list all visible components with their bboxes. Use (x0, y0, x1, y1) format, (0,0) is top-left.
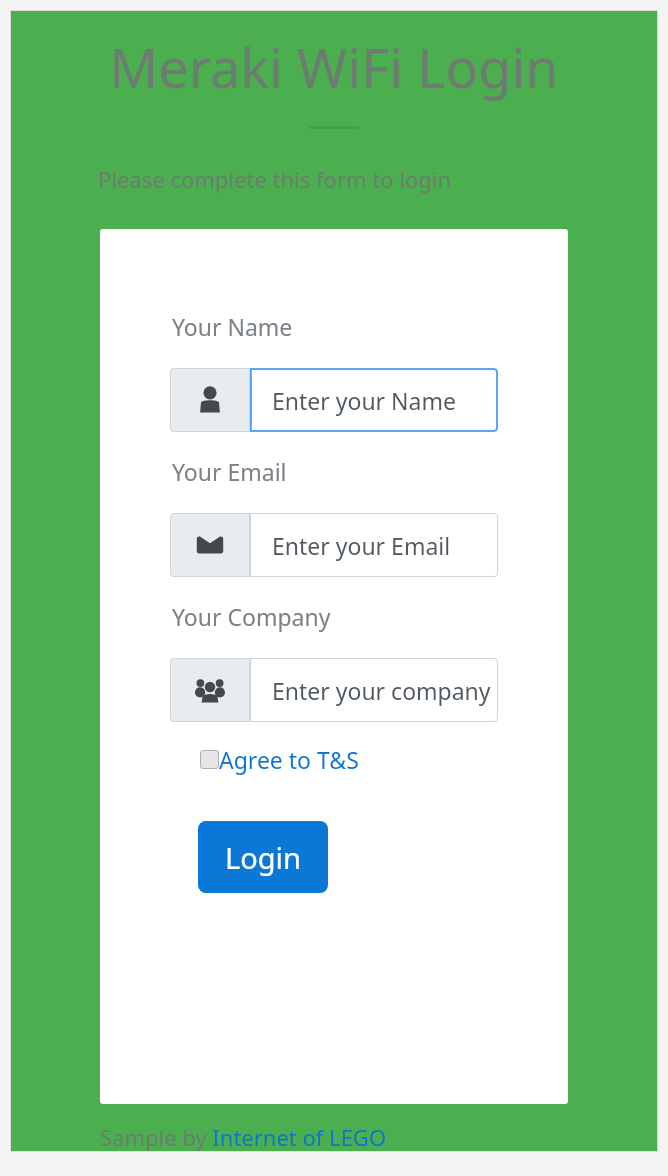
staticText: Login (225, 838, 301, 877)
other: Email (170, 513, 250, 577)
staticText: Your Name (172, 311, 293, 342)
button[interactable]: Company (170, 658, 498, 722)
other: Company (170, 658, 250, 722)
staticText: Enter your Name (272, 385, 456, 416)
staticText: Your Email (172, 456, 287, 487)
staticText: Your Company (172, 601, 331, 632)
button[interactable]: Sample by Internet of LEGO (100, 1122, 387, 1152)
button[interactable]: Agree to T&S (200, 744, 359, 775)
staticText: Enter your company (272, 675, 491, 706)
staticText: Meraki WiFi Login (10, 30, 658, 104)
other: Name (170, 368, 250, 432)
staticText: Please complete this form to login (98, 164, 452, 194)
staticText: Agree to T&S (219, 744, 359, 775)
staticText: Enter your Email (272, 530, 451, 561)
button[interactable]: Name (170, 368, 498, 432)
button[interactable]: Login (198, 821, 328, 893)
button[interactable]: Email (170, 513, 498, 577)
